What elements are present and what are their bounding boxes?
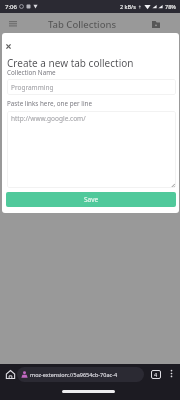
button[interactable]: http://www.google.com/ xyxy=(7,111,176,188)
staticText: 2 kB/s xyxy=(120,3,136,10)
staticText: 4 xyxy=(154,371,158,378)
button[interactable]: New collection xyxy=(148,17,163,32)
staticText: 78% xyxy=(165,3,176,10)
button[interactable]: Menu xyxy=(5,16,20,31)
staticText: Tab Collections xyxy=(48,18,117,31)
staticText: Collection Name xyxy=(7,68,56,77)
staticText: moz-extension://5a9654cb-70ac-4 xyxy=(30,371,118,378)
button[interactable]: Close xyxy=(4,42,13,51)
staticText: Create a new tab collection xyxy=(7,56,134,70)
button[interactable]: Save xyxy=(6,192,176,207)
button[interactable]: Tabs xyxy=(148,366,164,382)
staticText: http://www.google.com/ xyxy=(11,114,86,123)
staticText: Paste links here, one per line xyxy=(7,99,93,108)
button[interactable]: Programming xyxy=(7,79,176,95)
button[interactable]: Home xyxy=(2,366,18,382)
button[interactable]: moz-extension://5a9654cb-70ac-4 xyxy=(17,367,144,382)
staticText: 7:06 xyxy=(5,3,17,11)
staticText: Programming xyxy=(11,83,54,92)
button[interactable]: More options xyxy=(164,366,179,381)
staticText: Save xyxy=(84,195,99,204)
